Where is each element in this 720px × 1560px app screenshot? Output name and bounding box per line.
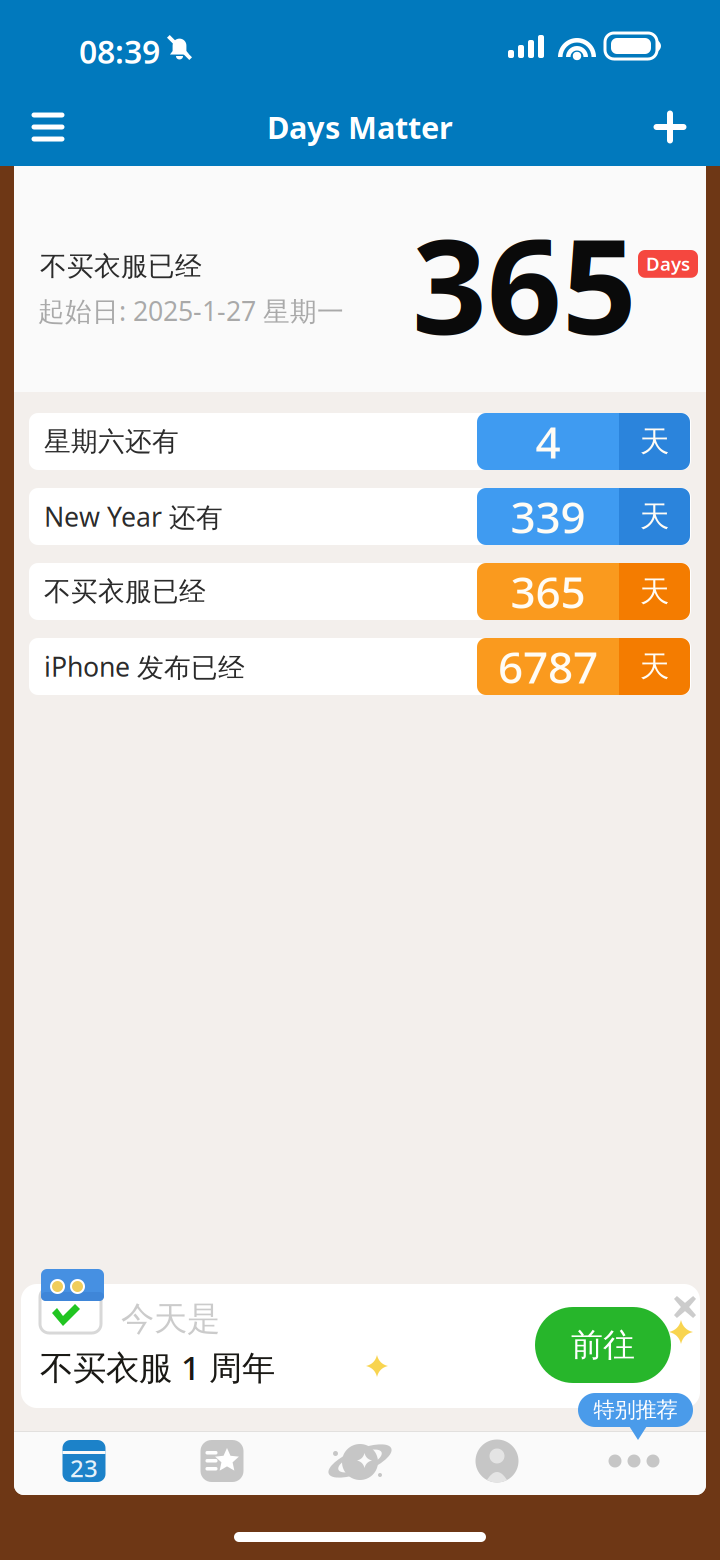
button[interactable]: 不买衣服已经 <box>14 165 706 392</box>
button[interactable]: Close <box>662 1284 708 1330</box>
staticText: 天 <box>640 423 669 459</box>
button[interactable]: Add <box>632 89 708 165</box>
staticText: iPhone 发布已经 <box>44 649 245 684</box>
staticText: 不买衣服 1 周年 <box>40 1345 275 1389</box>
button[interactable]: Events <box>15 1430 153 1492</box>
button[interactable]: Discover <box>291 1430 429 1492</box>
button[interactable]: New Year 还有 <box>29 488 691 545</box>
button[interactable]: More <box>565 1430 703 1492</box>
button[interactable]: iPhone 发布已经 <box>29 638 691 695</box>
staticText: 4 <box>535 412 560 471</box>
staticText: 339 <box>510 487 585 546</box>
staticText: 不买衣服已经 <box>40 250 202 283</box>
staticText: 前往 <box>571 1325 635 1365</box>
staticText: 天 <box>640 573 669 609</box>
button[interactable]: 星期六还有 <box>29 413 691 470</box>
staticText: 不买衣服已经 <box>44 575 206 608</box>
staticText: 起始日: 2025-1-27 星期一 <box>38 293 344 328</box>
button[interactable]: Collections <box>153 1430 291 1492</box>
staticText: Days Matter <box>267 107 453 147</box>
staticText: 星期六还有 <box>44 425 179 458</box>
staticText: 23 <box>70 1452 98 1484</box>
staticText: 6787 <box>498 637 598 696</box>
button[interactable]: 不买衣服已经 <box>29 563 691 620</box>
staticText: 今天是 <box>121 1298 220 1339</box>
staticText: Days <box>646 251 690 276</box>
staticText: 365 <box>510 562 585 621</box>
staticText: 08:39 <box>79 30 160 72</box>
button[interactable]: 前往 <box>535 1307 671 1383</box>
staticText: 特别推荐 <box>593 1397 677 1423</box>
staticText: 天 <box>640 648 669 684</box>
button[interactable]: Account <box>428 1430 566 1492</box>
staticText: New Year 还有 <box>44 499 223 534</box>
button[interactable]: Menu <box>10 89 86 165</box>
staticText: 365 <box>412 197 637 370</box>
staticText: 天 <box>640 498 669 534</box>
